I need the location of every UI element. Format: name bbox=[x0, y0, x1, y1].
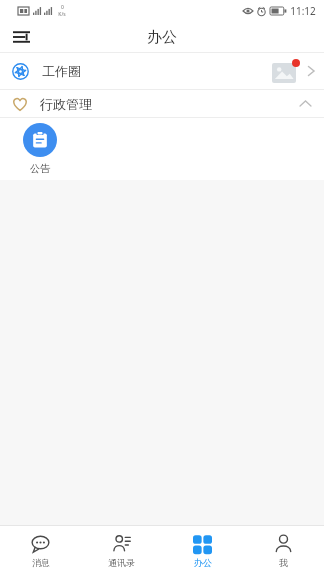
staticText: 办公 bbox=[147, 28, 177, 47]
staticText: 我 bbox=[279, 557, 288, 568]
button[interactable]: 消息 bbox=[0, 526, 81, 576]
staticText: 消息 bbox=[32, 557, 50, 568]
button[interactable]: 通讯录 bbox=[81, 526, 162, 576]
staticText: 11:12 bbox=[290, 4, 316, 18]
staticText: 0 bbox=[61, 4, 64, 11]
button[interactable]: Menu bbox=[6, 22, 36, 52]
button[interactable]: 我 bbox=[243, 526, 324, 576]
button[interactable]: 工作圈 bbox=[0, 53, 324, 89]
staticText: 公告 bbox=[30, 162, 50, 175]
button[interactable]: 行政管理 bbox=[0, 90, 324, 117]
staticText: K/s bbox=[58, 11, 66, 18]
staticText: 通讯录 bbox=[108, 557, 135, 568]
button[interactable]: 公告 bbox=[12, 123, 68, 175]
button[interactable]: 办公 bbox=[162, 526, 243, 576]
staticText: 办公 bbox=[194, 557, 212, 568]
staticText: 行政管理 bbox=[40, 96, 92, 112]
staticText: 工作圈 bbox=[42, 63, 81, 79]
